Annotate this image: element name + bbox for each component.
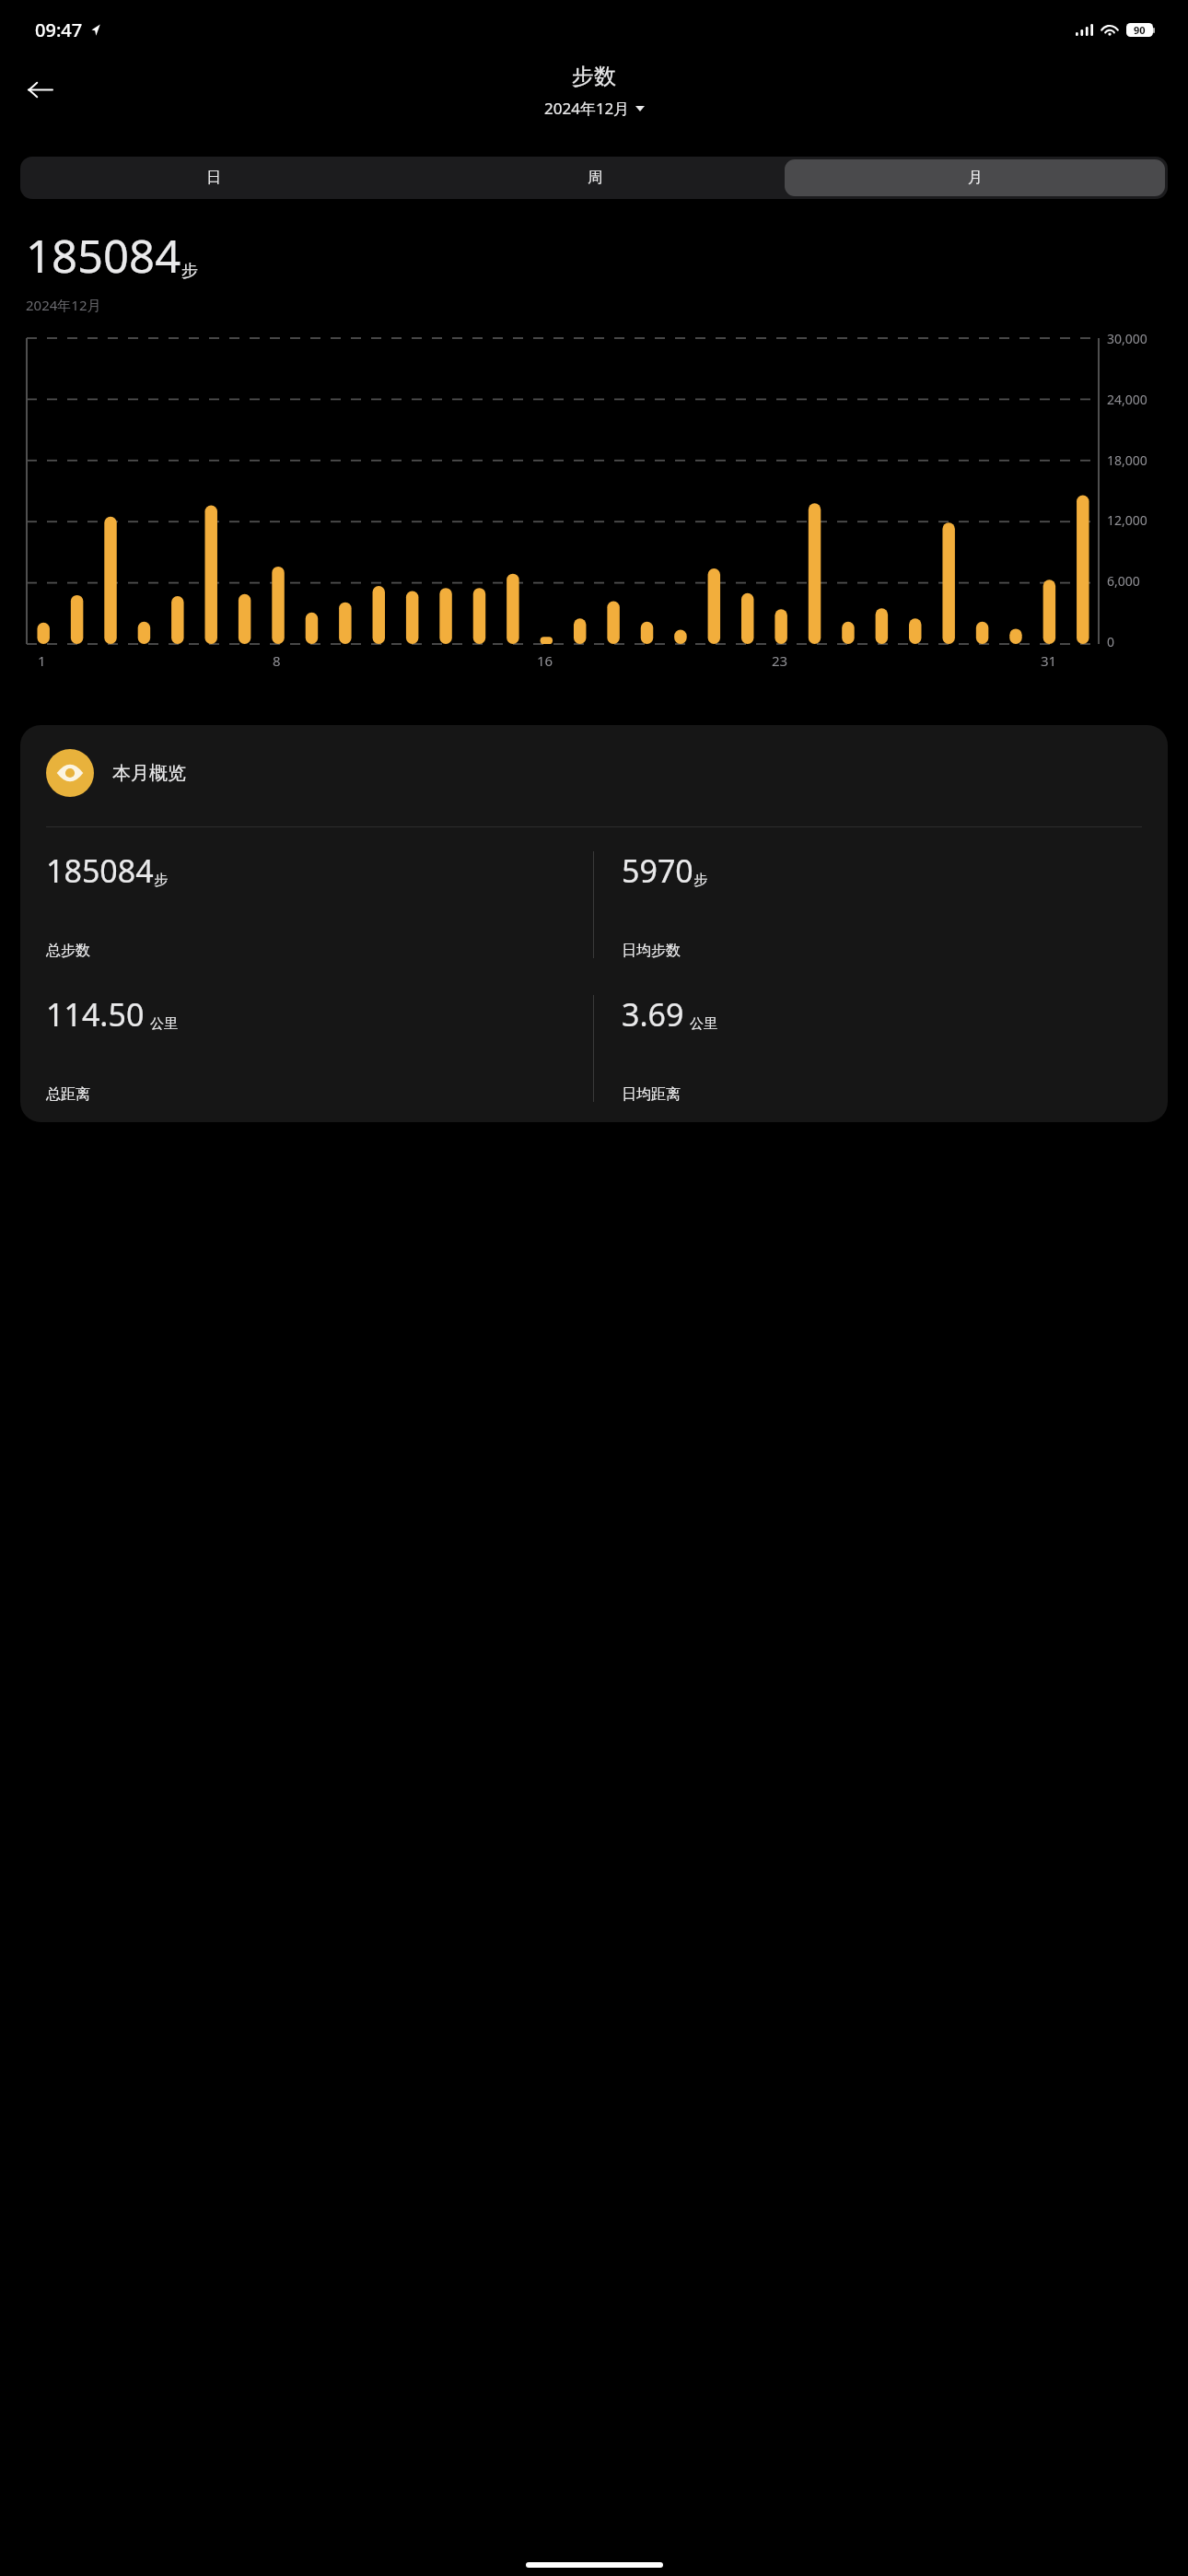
button[interactable]: Back — [15, 64, 64, 114]
staticText: 1 — [38, 651, 46, 670]
staticText: 0 — [1107, 633, 1115, 650]
staticText: 日均距离 — [622, 1085, 681, 1104]
staticText: 5970 — [622, 849, 693, 892]
staticText: 18,000 — [1107, 451, 1147, 469]
staticText: 公里 — [690, 1015, 717, 1033]
staticText: 步 — [181, 261, 198, 282]
staticText: 日 — [206, 169, 221, 187]
staticText: 总距离 — [46, 1085, 90, 1104]
staticText: 总步数 — [46, 942, 90, 960]
staticText: 3.69 — [622, 993, 684, 1036]
staticText: 30,000 — [1107, 330, 1147, 347]
staticText: 12,000 — [1107, 511, 1147, 529]
staticText: 本月概览 — [112, 762, 186, 785]
staticText: 185084 — [46, 849, 154, 892]
staticText: 步数 — [572, 63, 616, 90]
staticText: 周 — [588, 169, 602, 187]
staticText: 185084 — [26, 225, 181, 287]
staticText: 09:47 — [35, 18, 83, 42]
button[interactable]: 本月概览 — [46, 749, 186, 797]
staticText: 2024年12月 — [544, 98, 630, 119]
button[interactable]: 日 — [23, 159, 404, 196]
staticText: 23 — [772, 651, 788, 670]
button[interactable]: 月 — [785, 159, 1165, 196]
staticText: 日均步数 — [622, 942, 681, 960]
staticText: 步 — [693, 872, 707, 889]
staticText: 16 — [537, 651, 553, 670]
button[interactable]: 2024年12月 — [544, 98, 645, 119]
staticText: 月 — [968, 169, 983, 187]
staticText: 步 — [154, 872, 168, 889]
staticText: 31 — [1041, 651, 1057, 670]
staticText: 90 — [1134, 23, 1146, 37]
staticText: 8 — [273, 651, 281, 670]
staticText: 2024年12月 — [26, 296, 101, 314]
staticText: 114.50 — [46, 993, 145, 1036]
staticText: 6,000 — [1107, 572, 1140, 590]
staticText: 24,000 — [1107, 391, 1147, 408]
button[interactable]: 周 — [404, 159, 785, 196]
staticText: 公里 — [150, 1015, 178, 1033]
